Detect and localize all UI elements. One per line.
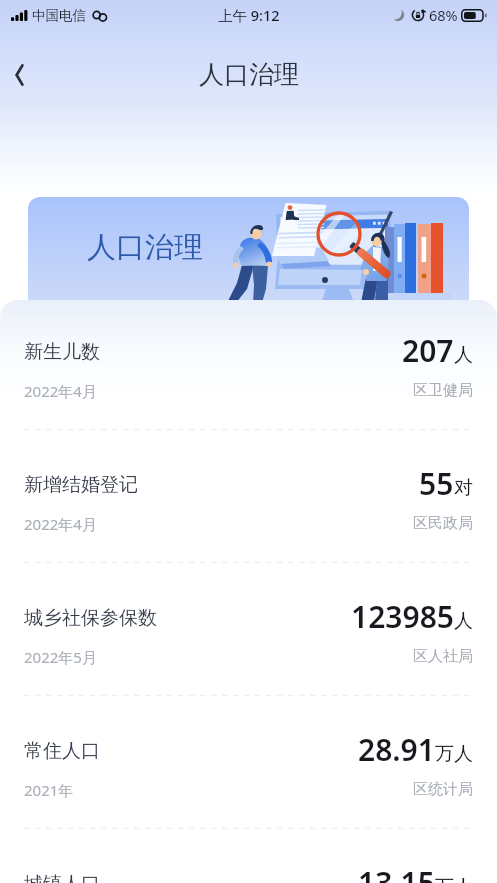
staticText: 28.91 <box>358 729 435 770</box>
staticText: 中国电信 <box>32 7 86 24</box>
staticText: 区人社局 <box>413 647 473 666</box>
staticText: 2021年 <box>24 780 74 800</box>
staticText: 人 <box>454 343 473 367</box>
staticText: 对 <box>454 476 473 500</box>
staticText: 万人 <box>435 875 473 883</box>
staticText: 万人 <box>435 742 473 766</box>
staticText: 人 <box>454 609 473 633</box>
staticText: 上午 9:12 <box>218 5 280 25</box>
button[interactable]: 新生儿数 <box>0 300 497 429</box>
staticText: 55 <box>419 463 454 504</box>
staticText: 13.15 <box>358 862 435 883</box>
staticText: 2022年5月 <box>24 647 97 667</box>
staticText: 城乡社保参保数 <box>24 606 157 630</box>
button[interactable]: 人口治理 <box>28 197 469 312</box>
staticText: 常住人口 <box>24 739 100 763</box>
staticText: 68% <box>429 5 458 25</box>
button[interactable]: 城乡社保参保数 <box>0 563 497 695</box>
staticText: 区卫健局 <box>413 381 473 400</box>
staticText: 城镇人口 <box>24 872 100 883</box>
staticText: 人口治理 <box>87 229 203 266</box>
staticText: 123985 <box>351 596 454 637</box>
staticText: 区统计局 <box>413 780 473 799</box>
staticText: 2022年4月 <box>24 514 97 534</box>
button[interactable]: 城镇人口 <box>0 829 497 880</box>
staticText: 2022年4月 <box>24 381 97 401</box>
staticText: 新增结婚登记 <box>24 473 138 497</box>
staticText: 新生儿数 <box>24 340 100 364</box>
button[interactable]: 新增结婚登记 <box>0 430 497 562</box>
staticText: 区民政局 <box>413 514 473 533</box>
staticText: 人口治理 <box>199 59 299 90</box>
button[interactable]: 常住人口 <box>0 696 497 828</box>
staticText: 207 <box>402 330 454 371</box>
button[interactable]: Back <box>0 51 44 99</box>
